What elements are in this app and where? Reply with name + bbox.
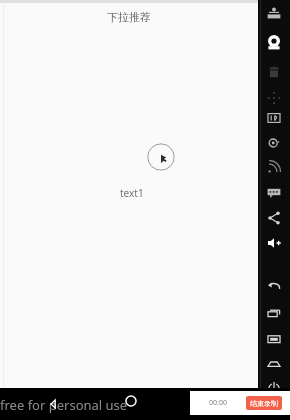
button[interactable]: Touch point: [147, 143, 175, 171]
staticText: free for personal use: [0, 396, 128, 414]
button[interactable]: Back: [264, 276, 284, 296]
staticText: 00:00: [209, 398, 227, 408]
staticText: 结束录制: [250, 399, 278, 408]
button[interactable]: Sensors: [264, 88, 284, 108]
button[interactable]: Keyboard: [264, 182, 284, 202]
button[interactable]: GPS: [264, 4, 284, 24]
button[interactable]: Window: [264, 329, 284, 349]
button[interactable]: Location dot: [264, 133, 284, 153]
button[interactable]: Share: [264, 208, 284, 228]
button[interactable]: Home: [122, 392, 140, 410]
button[interactable]: Microphone: [264, 62, 284, 82]
button[interactable]: Recents: [264, 303, 284, 323]
button[interactable]: Back: [48, 394, 68, 414]
staticText: text1: [120, 186, 144, 200]
button[interactable]: 结束录制: [246, 396, 282, 410]
button[interactable]: Power: [264, 378, 284, 398]
button[interactable]: Volume up: [264, 233, 284, 253]
button[interactable]: Signal: [264, 157, 284, 177]
staticText: 下拉推荐: [107, 10, 151, 24]
button[interactable]: Camera: [264, 33, 284, 53]
button[interactable]: text1: [118, 185, 146, 201]
button[interactable]: Home: [264, 354, 284, 374]
button[interactable]: Identity: [264, 108, 284, 128]
